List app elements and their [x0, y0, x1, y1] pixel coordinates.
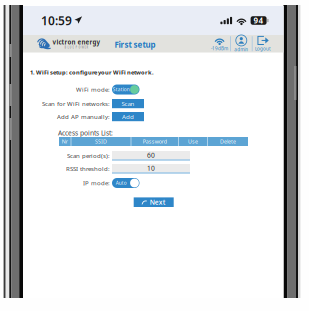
staticText: admin — [234, 46, 248, 52]
staticText: Use — [188, 138, 198, 145]
staticText: victron energy — [53, 38, 101, 46]
staticText: 60 — [147, 151, 155, 160]
staticText: 94 — [254, 15, 264, 26]
button[interactable]: Auto — [112, 178, 139, 188]
staticText: Password — [143, 138, 167, 145]
button[interactable]: 60 — [112, 151, 190, 160]
button[interactable]: Add — [112, 112, 144, 121]
staticText: Delete — [220, 138, 236, 145]
staticText: Add AP manually: — [57, 113, 110, 121]
button[interactable]: 10 — [112, 164, 190, 173]
staticText: WiFi mode: — [76, 85, 110, 93]
staticText: SSID — [95, 138, 107, 145]
staticText: Scan for WiFi networks: — [42, 100, 110, 108]
staticText: Scan — [121, 99, 134, 108]
staticText: -19dBm — [211, 45, 228, 51]
staticText: IP mode: — [83, 179, 110, 187]
button[interactable]: admin — [231, 35, 252, 52]
staticText: Station — [113, 86, 130, 93]
staticText: Scan period(s): — [67, 152, 110, 160]
button[interactable]: Victron Energy — [38, 38, 101, 49]
button[interactable]: -19dBm — [209, 35, 230, 52]
button[interactable]: Next — [134, 197, 174, 207]
button[interactable]: Station — [112, 84, 139, 94]
button[interactable]: Logout — [252, 35, 273, 52]
staticText: Access points List: — [58, 128, 113, 137]
staticText: Next — [150, 198, 166, 207]
staticText: Logout — [255, 46, 271, 52]
staticText: 10:59 — [41, 12, 72, 28]
staticText: Nr — [62, 138, 68, 145]
staticText: Auto — [116, 180, 127, 186]
staticText: B L U E P O W E R — [65, 46, 89, 49]
staticText: RSSI threshold: — [66, 165, 110, 173]
button[interactable]: Scan — [112, 99, 144, 108]
staticText: 1. WiFi setup: configure your WiFi netwo… — [30, 68, 154, 76]
staticText: First setup — [115, 39, 156, 50]
staticText: Add — [122, 112, 134, 121]
staticText: 10 — [147, 164, 155, 173]
